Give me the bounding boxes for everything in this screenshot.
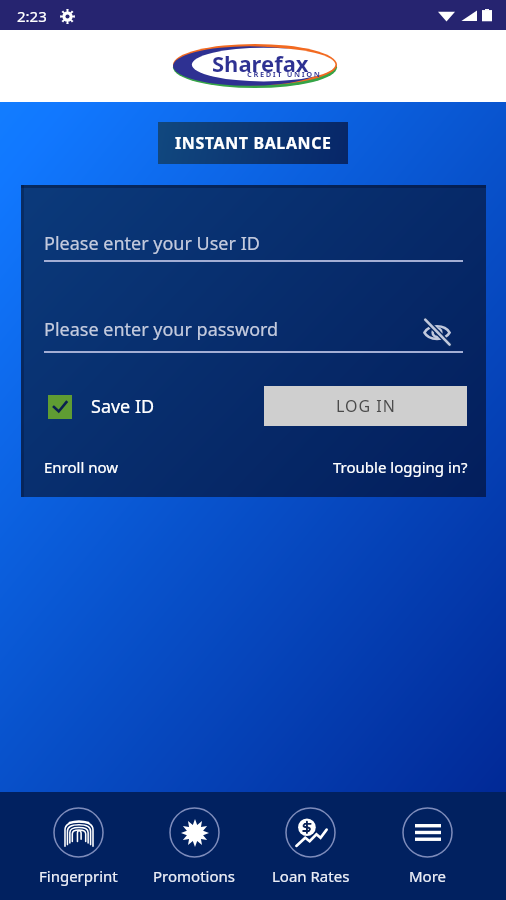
button[interactable]: LOG IN [264, 386, 467, 426]
button[interactable]: Promotions [136, 801, 252, 892]
staticText: Loan Rates [272, 866, 350, 886]
staticText: LOG IN [336, 395, 396, 417]
staticText: CREDIT UNION [247, 69, 322, 79]
button[interactable]: More [369, 801, 486, 892]
staticText: Please enter your User ID [44, 231, 260, 256]
staticText: 2:23 [17, 6, 47, 26]
staticText: More [409, 866, 447, 886]
staticText: Promotions [153, 866, 235, 886]
staticText: Sharefax [212, 48, 309, 78]
button[interactable]: Loan Rates [252, 801, 369, 892]
staticText: Fingerprint [39, 866, 118, 886]
button[interactable]: Enroll now [44, 457, 119, 477]
button[interactable]: Show password [422, 317, 452, 347]
button[interactable]: Trouble logging in? [333, 457, 468, 477]
button[interactable]: Fingerprint [20, 801, 136, 892]
staticText: INSTANT BALANCE [175, 132, 332, 154]
staticText: Please enter your password [44, 317, 279, 342]
button[interactable]: INSTANT BALANCE [158, 122, 348, 164]
button[interactable]: Save ID [44, 394, 155, 419]
staticText: Save ID [91, 394, 155, 419]
